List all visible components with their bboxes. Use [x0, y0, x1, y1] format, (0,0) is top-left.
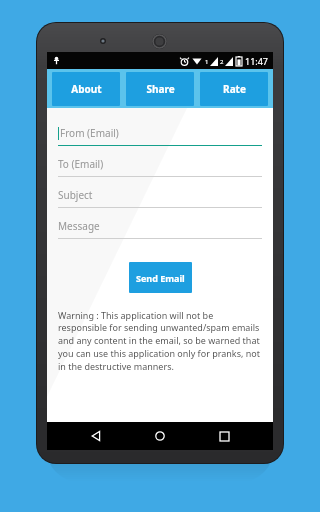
- staticText: Message: [58, 219, 100, 233]
- button[interactable]: Subject: [58, 182, 262, 213]
- staticText: Subject: [58, 188, 93, 202]
- staticText: Send Email: [136, 272, 185, 284]
- button[interactable]: Recent apps: [209, 422, 239, 450]
- staticText: From (Email): [60, 126, 119, 140]
- button[interactable]: Send Email: [129, 262, 192, 293]
- staticText: 11:47: [245, 55, 269, 67]
- button[interactable]: Home: [145, 422, 175, 450]
- button[interactable]: Rate: [200, 72, 268, 106]
- staticText: Rate: [223, 82, 246, 96]
- staticText: Share: [146, 82, 175, 96]
- button[interactable]: About: [52, 72, 120, 106]
- button[interactable]: From (Email): [58, 120, 262, 151]
- staticText: 1: [205, 58, 209, 66]
- staticText: Warning : This application will not be r…: [58, 309, 262, 373]
- staticText: About: [71, 82, 102, 96]
- button[interactable]: Share: [126, 72, 194, 106]
- button[interactable]: Back: [81, 422, 111, 450]
- button[interactable]: Message: [58, 213, 262, 244]
- button[interactable]: To (Email): [58, 151, 262, 182]
- staticText: To (Email): [58, 157, 104, 171]
- staticText: 2: [220, 58, 224, 66]
